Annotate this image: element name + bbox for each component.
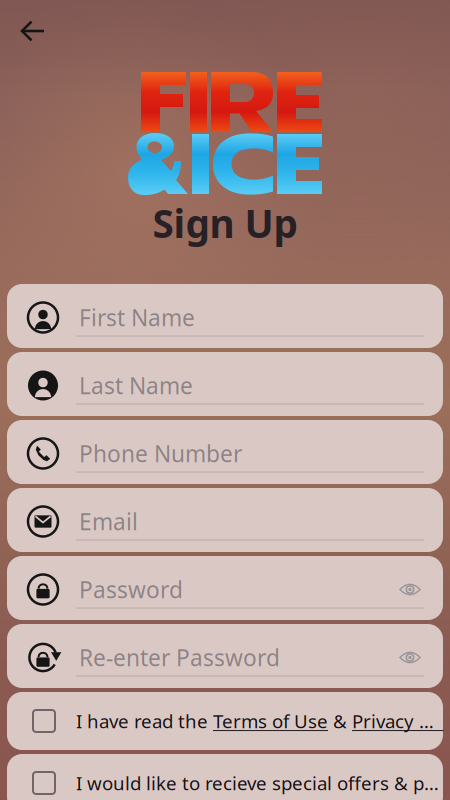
- button[interactable]: I would like to recieve special offers &…: [7, 754, 443, 800]
- button[interactable]: I have read the Terms of Use & Privacy P…: [7, 692, 443, 750]
- button[interactable]: Email: [7, 488, 443, 552]
- staticText: Re-enter Password: [79, 642, 280, 672]
- staticText: I would like to recieve special offers &…: [76, 771, 443, 795]
- button[interactable]: Back: [10, 11, 56, 51]
- staticText: First Name: [79, 302, 195, 332]
- staticText: Last Name: [79, 370, 193, 400]
- staticText: I have read the Terms of Use & Privacy P…: [76, 709, 443, 733]
- staticText: Sign Up: [152, 197, 297, 249]
- button[interactable]: First Name: [7, 284, 443, 348]
- staticText: Email: [79, 506, 138, 536]
- staticText: Phone Number: [79, 438, 242, 468]
- button[interactable]: Phone Number: [7, 420, 443, 484]
- button[interactable]: Password: [7, 556, 443, 620]
- button[interactable]: Re-enter Password: [7, 624, 443, 688]
- staticText: Password: [79, 574, 183, 604]
- button[interactable]: Last Name: [7, 352, 443, 416]
